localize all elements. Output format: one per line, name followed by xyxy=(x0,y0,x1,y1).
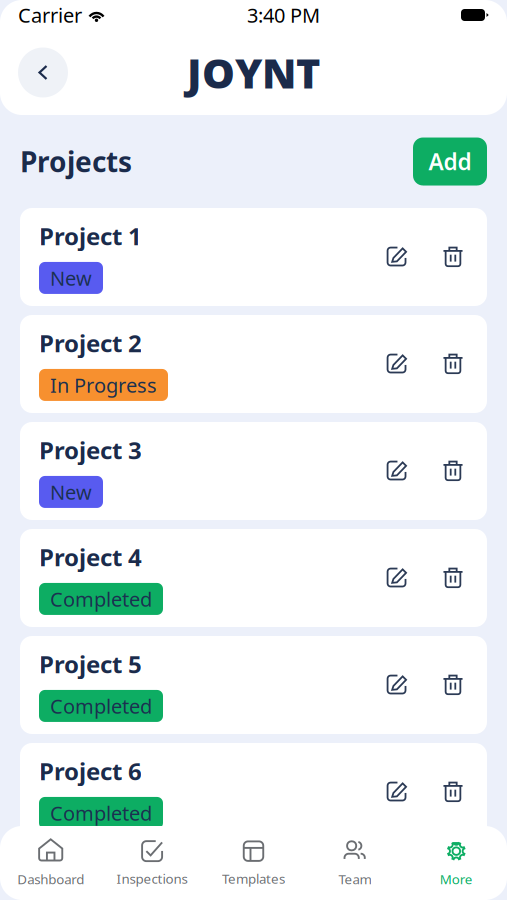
staticText: In Progress xyxy=(50,372,157,398)
staticText: Add xyxy=(428,146,471,176)
button[interactable]: Edit Project 4 xyxy=(382,563,412,593)
staticText: Project 3 xyxy=(39,434,142,466)
staticText: Projects xyxy=(20,143,132,180)
staticText: Project 7 xyxy=(39,862,142,894)
staticText: New xyxy=(50,265,92,291)
button[interactable]: Edit Project 2 xyxy=(382,349,412,379)
button[interactable]: Edit Project 6 xyxy=(382,777,412,807)
button[interactable]: Delete Project 5 xyxy=(438,670,468,700)
staticText: More xyxy=(440,870,473,888)
button[interactable]: Edit Project 3 xyxy=(382,456,412,486)
button[interactable]: Delete Project 7 xyxy=(438,884,468,900)
staticText: Team xyxy=(338,870,371,888)
staticText: Completed xyxy=(50,586,152,612)
button[interactable]: Inspections xyxy=(101,832,203,894)
staticText: Completed xyxy=(50,800,152,826)
staticText: 3:40 PM xyxy=(247,2,320,28)
staticText: Dashboard xyxy=(17,870,84,888)
button[interactable]: Delete Project 2 xyxy=(438,349,468,379)
staticText: Inspections xyxy=(117,870,188,887)
staticText: Completed xyxy=(50,693,152,719)
button[interactable]: Delete Project 4 xyxy=(438,563,468,593)
staticText: Project 4 xyxy=(39,541,142,573)
staticText: New xyxy=(50,479,92,505)
staticText: Project 1 xyxy=(39,220,142,252)
staticText: Project 5 xyxy=(39,648,142,680)
button[interactable]: Templates xyxy=(203,832,304,894)
button[interactable]: Delete Project 1 xyxy=(438,242,468,272)
staticText: Project 2 xyxy=(39,327,142,359)
button[interactable]: More xyxy=(406,832,507,894)
button[interactable]: Edit Project 1 xyxy=(382,242,412,272)
button[interactable]: Delete Project 6 xyxy=(438,777,468,807)
button[interactable]: Dashboard xyxy=(0,832,101,894)
button[interactable]: Team xyxy=(304,832,406,894)
staticText: Carrier xyxy=(18,2,82,28)
staticText: JOYNT xyxy=(187,45,320,100)
button[interactable]: Add xyxy=(413,137,487,185)
staticText: Project 6 xyxy=(39,755,142,787)
staticText: Templates xyxy=(222,870,285,887)
button[interactable]: Back xyxy=(18,47,68,97)
button[interactable]: Edit Project 5 xyxy=(382,670,412,700)
button[interactable]: Delete Project 3 xyxy=(438,456,468,486)
